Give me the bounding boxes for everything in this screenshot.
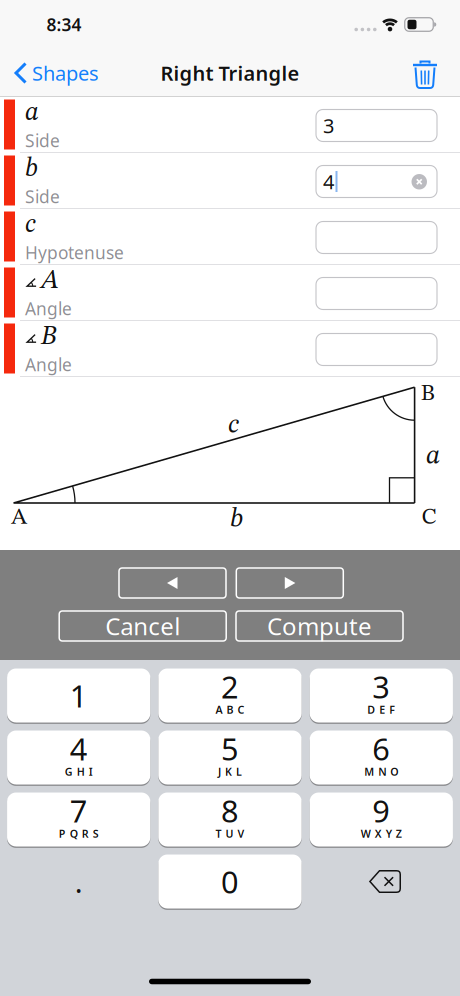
staticText: P Q R S — [59, 826, 99, 841]
staticText: 5 — [221, 728, 239, 769]
staticText: M N O — [364, 764, 398, 779]
button[interactable]: Next field — [236, 568, 343, 598]
staticText: 6 — [372, 728, 390, 769]
staticText: 3 — [323, 112, 334, 139]
staticText: 8:34 — [46, 13, 81, 36]
staticText: Cancel — [105, 610, 180, 642]
button[interactable]: Angle B — [316, 333, 437, 365]
staticText: 0 — [221, 861, 239, 902]
staticText: 8 — [221, 790, 239, 831]
staticText: D E F — [367, 702, 395, 717]
staticText: Compute — [267, 610, 372, 642]
staticText: G H I — [65, 764, 93, 779]
button[interactable]: Side b — [316, 165, 437, 197]
staticText: 2 — [221, 666, 239, 707]
staticText: . — [75, 862, 83, 901]
staticText: 1 — [70, 675, 88, 716]
button[interactable]: 2 — [158, 667, 302, 723]
staticText: A — [41, 268, 59, 294]
button[interactable]: 0 — [158, 853, 302, 909]
staticText: Shapes — [32, 60, 99, 86]
staticText: 4 — [323, 168, 334, 195]
button[interactable]: Cancel — [59, 611, 226, 641]
button[interactable]: Delete — [369, 870, 401, 893]
staticText: b — [25, 156, 38, 182]
button[interactable]: Shapes — [14, 56, 114, 90]
staticText: C — [422, 506, 437, 529]
staticText: T U V — [215, 826, 244, 841]
staticText: a — [25, 100, 39, 126]
button[interactable]: Delete — [412, 59, 438, 89]
button[interactable]: Angle A — [316, 277, 437, 309]
button[interactable]: 4 — [7, 729, 150, 785]
button[interactable]: Side a — [316, 109, 437, 141]
staticText: B — [41, 324, 56, 350]
staticText: b — [230, 506, 243, 533]
button[interactable]: 5 — [158, 729, 302, 785]
staticText: A B C — [215, 702, 244, 717]
staticText: B — [421, 383, 435, 405]
button[interactable]: Decimal point — [7, 854, 150, 908]
staticText: Side — [25, 185, 60, 208]
staticText: a — [426, 443, 440, 470]
staticText: Right Triangle — [160, 60, 299, 86]
button[interactable]: 3 — [310, 667, 453, 723]
staticText: Angle — [25, 297, 72, 320]
staticText: W X Y Z — [361, 826, 402, 841]
button[interactable]: 8 — [158, 791, 302, 847]
staticText: J K L — [218, 764, 242, 779]
staticText: Side — [25, 129, 60, 152]
button[interactable]: Compute — [236, 611, 403, 641]
staticText: Hypotenuse — [25, 241, 124, 264]
staticText: 9 — [372, 790, 390, 831]
button[interactable]: Previous field — [119, 568, 226, 598]
button[interactable]: Hypotenuse c — [316, 221, 437, 253]
staticText: 7 — [70, 790, 88, 831]
staticText: A — [11, 506, 27, 529]
staticText: Angle — [25, 353, 72, 376]
button[interactable]: 6 — [310, 729, 453, 785]
button[interactable]: 1 — [7, 667, 150, 723]
staticText: c — [228, 412, 239, 439]
button[interactable]: Clear text — [411, 174, 427, 189]
staticText: 3 — [372, 666, 390, 707]
button[interactable]: 9 — [310, 791, 453, 847]
button[interactable]: 7 — [7, 791, 150, 847]
staticText: c — [25, 212, 36, 238]
staticText: 4 — [70, 728, 88, 769]
